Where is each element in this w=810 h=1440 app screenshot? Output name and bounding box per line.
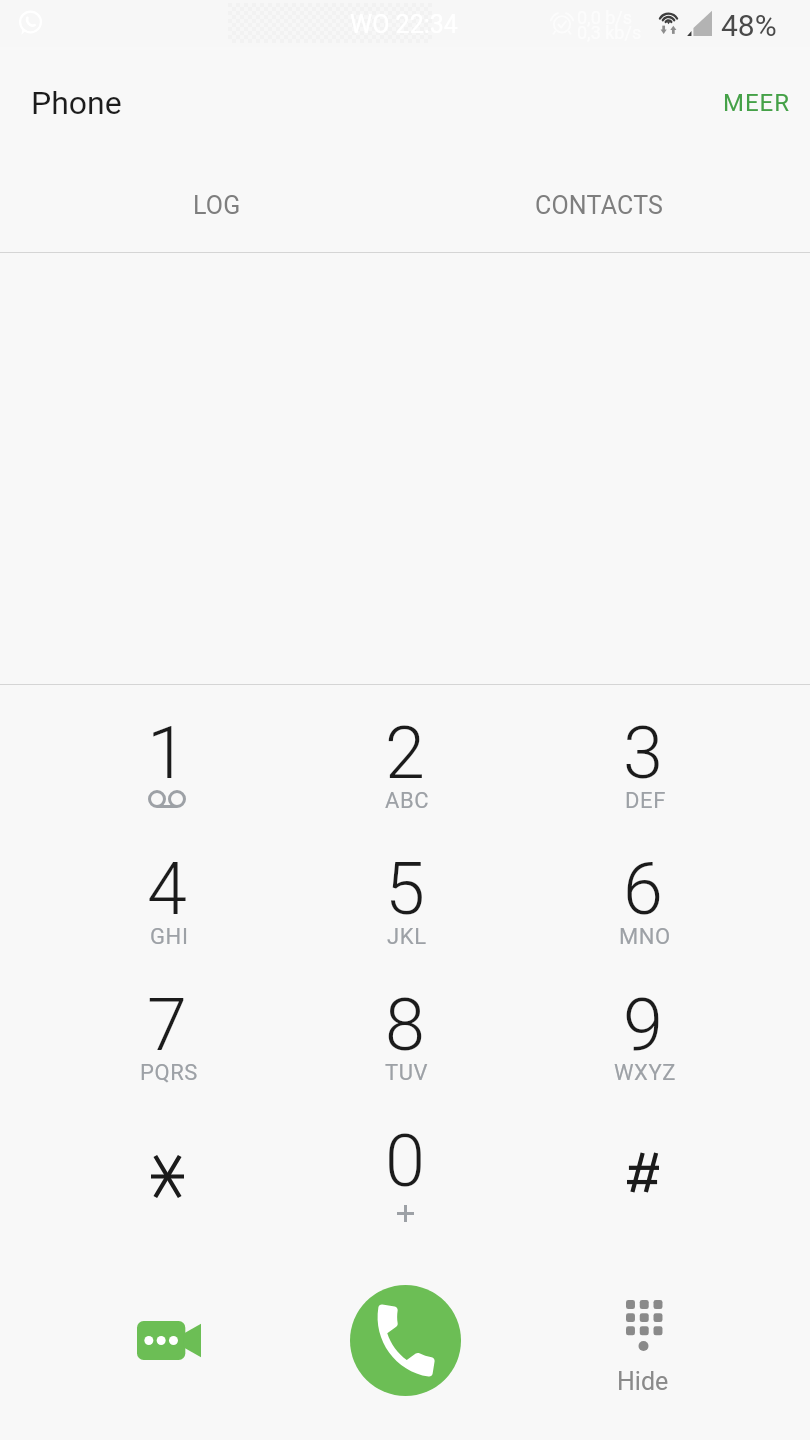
staticText: JKL (387, 924, 427, 950)
staticText: PQRS (140, 1060, 199, 1086)
button[interactable]: 1 (48, 685, 286, 821)
button[interactable]: CONTACTS (405, 147, 785, 252)
button[interactable]: 6 (524, 821, 762, 957)
staticText: 5 (385, 847, 425, 931)
staticText: 9 (623, 983, 663, 1067)
button[interactable]: 9 (524, 957, 762, 1093)
staticText: 6 (623, 847, 663, 931)
button[interactable] (524, 1093, 762, 1229)
button[interactable]: 0 (286, 1093, 524, 1229)
staticText: Hide (617, 1367, 669, 1396)
staticText: LOG (193, 191, 241, 220)
staticText: 7 (147, 983, 187, 1067)
button[interactable]: 8 (286, 957, 524, 1093)
button[interactable]: MEER (693, 47, 810, 143)
button[interactable]: 5 (286, 821, 524, 957)
staticText: ABC (385, 788, 430, 814)
button[interactable]: 3 (524, 685, 762, 821)
staticText: 0 (385, 1119, 425, 1203)
staticText: MEER (723, 89, 791, 117)
button[interactable]: 2 (286, 685, 524, 821)
button[interactable]: Video call (48, 1229, 286, 1440)
staticText: DEF (625, 788, 666, 814)
staticText: 48% (721, 8, 777, 43)
staticText: 1 (147, 711, 187, 795)
button[interactable] (48, 1093, 286, 1229)
staticText: WO 22:34 (350, 10, 458, 39)
button[interactable]: 7 (48, 957, 286, 1093)
button[interactable]: Call (350, 1285, 461, 1396)
staticText: CONTACTS (535, 191, 664, 220)
staticText: 3 (623, 711, 663, 795)
staticText: TUV (385, 1060, 429, 1086)
button[interactable]: LOG (25, 147, 405, 252)
staticText: Phone (31, 84, 122, 122)
staticText: 8 (385, 983, 425, 1067)
staticText: 2 (385, 711, 425, 795)
staticText: WXYZ (614, 1060, 677, 1086)
staticText: MNO (619, 924, 671, 950)
button[interactable]: 4 (48, 821, 286, 957)
staticText: GHI (150, 924, 189, 950)
button[interactable]: Hide keypad (524, 1229, 762, 1440)
staticText: 4 (147, 847, 187, 931)
